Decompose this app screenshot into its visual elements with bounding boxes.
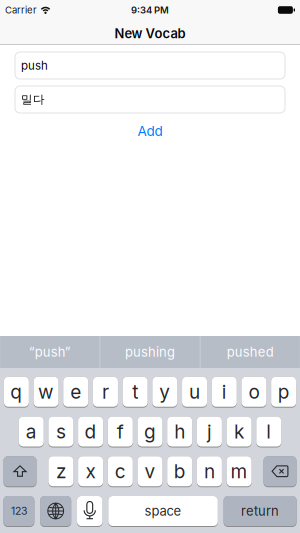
button[interactable]: e [63,377,88,408]
button[interactable]: o [241,377,266,408]
button[interactable]: n [197,456,222,487]
button[interactable]: f [108,416,133,447]
button[interactable]: v [137,456,162,487]
staticText: Add [137,123,162,139]
button[interactable]: s [48,416,73,447]
button[interactable]: y [152,377,177,408]
button[interactable] [40,496,71,527]
button[interactable]: r [93,377,118,408]
staticText: z [56,460,66,483]
staticText: Carrier [5,4,37,16]
button[interactable] [263,456,296,487]
button[interactable]: space [108,496,218,527]
staticText: l [266,420,271,443]
button[interactable]: d [78,416,103,447]
button[interactable]: 밀다 [15,86,285,113]
staticText: t [132,380,138,403]
staticText: x [86,460,96,483]
button[interactable]: k [227,416,252,447]
staticText: n [204,460,215,483]
button[interactable]: l [256,416,281,447]
staticText: 123 [11,505,27,517]
staticText: pushed [227,344,274,360]
staticText: e [70,380,81,403]
staticText: s [56,420,66,443]
staticText: k [234,420,244,443]
staticText: w [38,380,54,403]
button[interactable]: z [48,456,73,487]
staticText: pushing [125,344,175,360]
staticText: space [145,503,182,519]
staticText: c [115,460,126,483]
button[interactable] [77,496,102,527]
button[interactable]: push [15,52,285,79]
staticText: “push” [29,344,71,360]
staticText: 9:34 PM [131,4,169,16]
staticText: m [231,460,248,483]
staticText: q [10,380,22,403]
button[interactable] [3,456,36,487]
button[interactable]: m [227,456,252,487]
button[interactable]: Add [137,113,162,139]
button[interactable]: q [4,377,29,408]
staticText: h [174,420,185,443]
button[interactable]: x [78,456,103,487]
button[interactable]: w [33,377,58,408]
staticText: return [241,503,279,519]
staticText: j [207,420,212,443]
button[interactable]: c [108,456,133,487]
staticText: y [159,380,170,403]
button[interactable]: return [224,496,297,527]
button[interactable]: p [271,377,296,408]
button[interactable]: u [182,377,207,408]
staticText: p [278,380,290,403]
staticText: New Vocab [114,26,185,41]
button[interactable]: 123 [3,496,34,527]
button[interactable]: i [212,377,237,408]
staticText: 밀다 [21,92,45,107]
staticText: i [222,380,227,403]
staticText: b [174,460,186,483]
button[interactable]: “push” [0,336,99,368]
staticText: g [144,420,156,443]
button[interactable]: j [197,416,222,447]
staticText: r [102,380,109,403]
staticText: f [117,420,124,443]
staticText: v [144,460,155,483]
staticText: u [189,380,200,403]
button[interactable]: a [19,416,44,447]
button[interactable]: pushing [100,336,200,368]
staticText: o [248,380,259,403]
button[interactable]: h [167,416,192,447]
staticText: a [26,420,37,443]
button[interactable]: b [167,456,192,487]
staticText: d [85,420,97,443]
button[interactable]: t [123,377,148,408]
button[interactable]: g [137,416,162,447]
staticText: push [21,58,48,72]
button[interactable]: pushed [201,336,300,368]
